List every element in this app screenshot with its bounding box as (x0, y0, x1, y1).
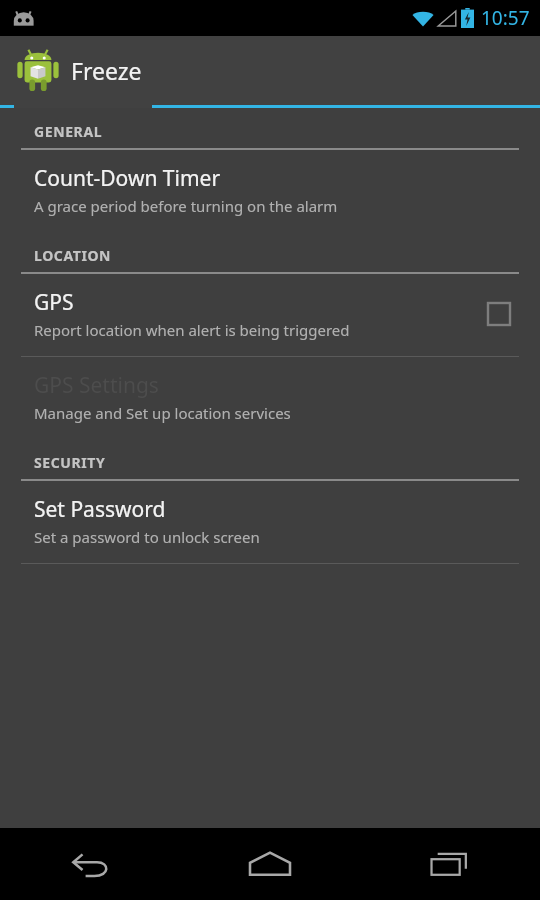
button[interactable]: Home (180, 828, 360, 900)
button[interactable]: GPS Settings (0, 357, 540, 439)
button[interactable]: Set Password (0, 481, 540, 563)
staticText: A grace period before turning on the ala… (34, 196, 338, 216)
staticText: Report location when alert is being trig… (34, 320, 350, 340)
button[interactable]: GPS (0, 274, 540, 356)
staticText: Set a password to unlock screen (34, 527, 260, 547)
staticText: Manage and Set up location services (34, 403, 291, 423)
staticText: Set Password (34, 495, 166, 524)
staticText: GPS (34, 288, 74, 317)
button[interactable]: Count-Down Timer (0, 150, 540, 232)
staticText: SECURITY (34, 453, 106, 472)
staticText: 10:57 (481, 5, 530, 31)
staticText: GENERAL (34, 122, 103, 141)
staticText: Count-Down Timer (34, 164, 221, 193)
button[interactable]: Back (0, 828, 180, 900)
staticText: GPS Settings (34, 371, 159, 400)
button[interactable]: GPS toggle (482, 297, 516, 331)
button[interactable]: Recent apps (360, 828, 540, 900)
staticText: LOCATION (34, 246, 112, 265)
staticText: Freeze (71, 55, 142, 86)
